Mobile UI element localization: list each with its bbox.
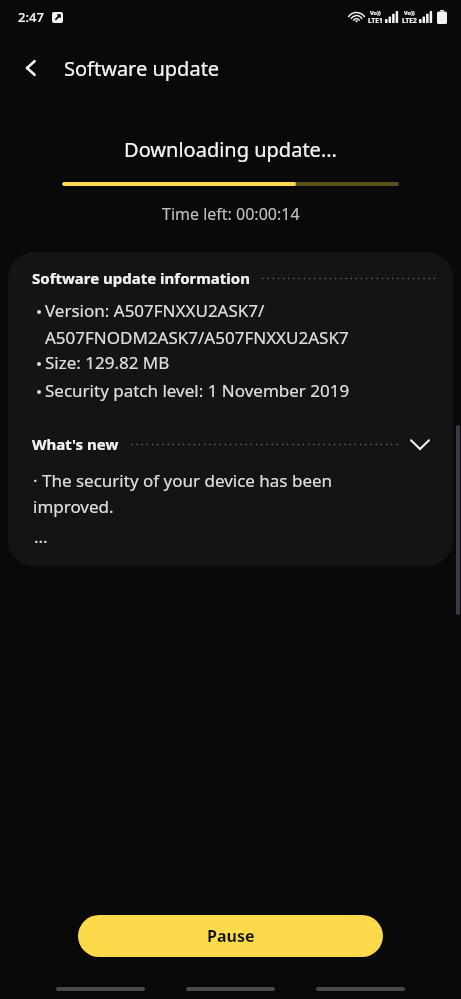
button[interactable]: Pause xyxy=(78,915,383,957)
button[interactable]: Home xyxy=(186,987,275,991)
staticText: Software update information xyxy=(32,268,250,288)
staticText: Time left: 00:00:14 xyxy=(162,203,300,225)
staticText: Vo)) xyxy=(404,9,415,16)
button[interactable]: Back xyxy=(7,44,55,92)
staticText: LTE1 xyxy=(368,16,383,25)
staticText: · The security of your device has been i… xyxy=(33,469,333,518)
staticText: 2:47 xyxy=(18,8,44,26)
staticText: A507FNODM2ASK7/A507FNXXU2ASK7 xyxy=(45,326,349,349)
staticText: Pause xyxy=(207,925,255,947)
staticText: What's new xyxy=(32,434,119,454)
staticText: Version: A507FNXXU2ASK7/ xyxy=(45,299,265,322)
staticText: Software update xyxy=(64,55,220,82)
staticText: Security patch level: 1 November 2019 xyxy=(45,379,350,402)
staticText: Size: 129.82 MB xyxy=(45,351,170,374)
staticText: ... xyxy=(34,525,48,548)
staticText: Downloading update... xyxy=(124,136,337,163)
button[interactable]: Recents xyxy=(56,987,145,991)
staticText: Vo)) xyxy=(370,9,381,16)
button[interactable]: Expand what's new xyxy=(401,425,439,463)
button[interactable]: Back xyxy=(316,987,405,991)
staticText: LTE2 xyxy=(402,16,417,25)
